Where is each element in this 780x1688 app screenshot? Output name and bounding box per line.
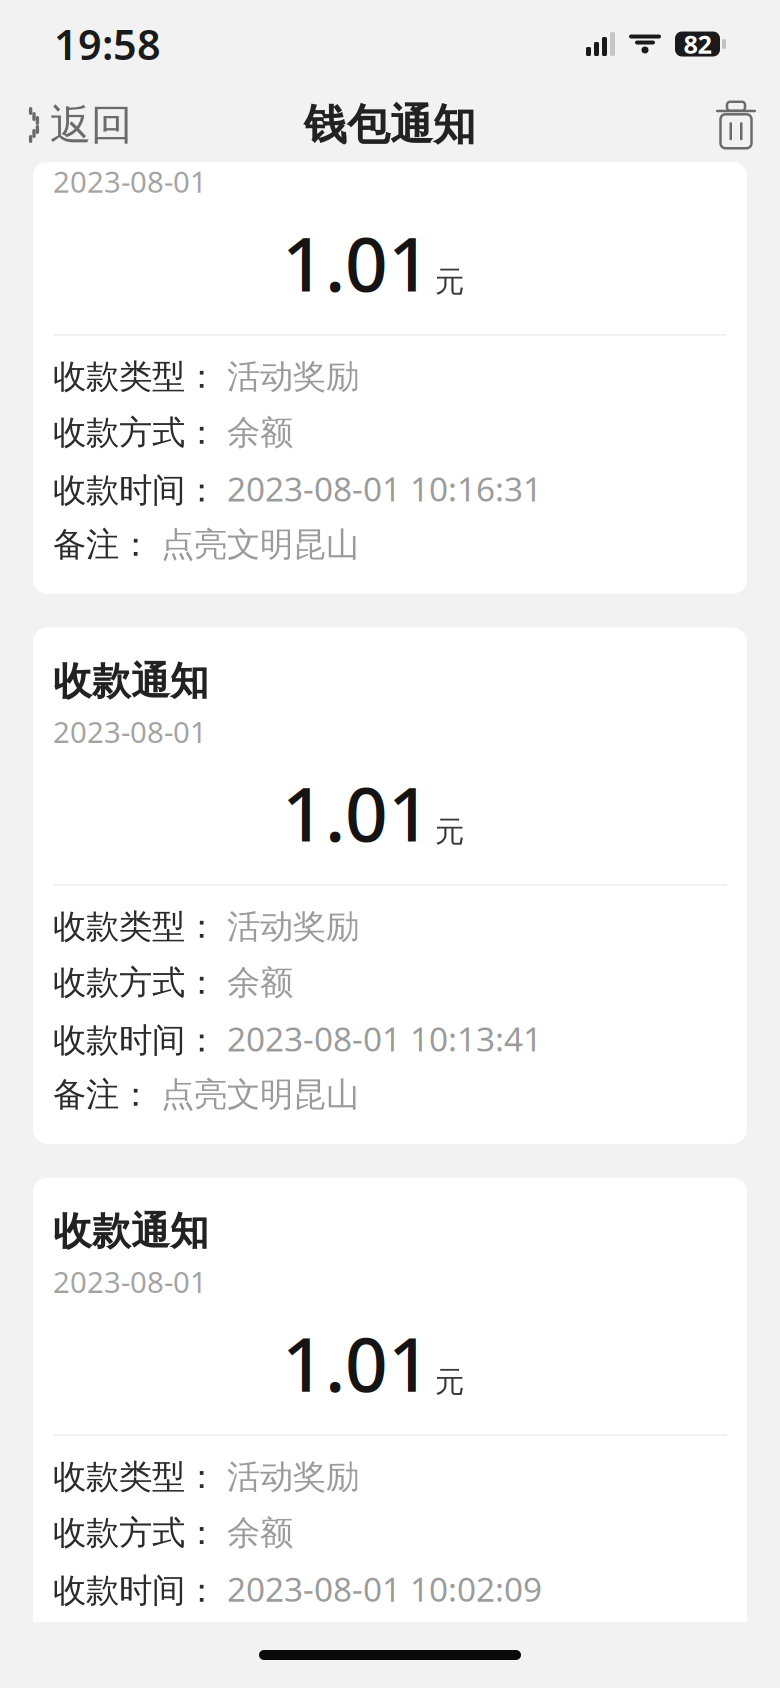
staticText: 点亮文明昆山 [161, 524, 359, 565]
staticText: 收款通知 [53, 658, 209, 705]
staticText: 元 [435, 1364, 464, 1400]
staticText: 收款通知 [53, 1208, 209, 1255]
staticText: 82 [683, 27, 711, 61]
staticText: 元 [435, 264, 464, 300]
staticText: 收款方式： [53, 1512, 218, 1553]
staticText: 2023-08-01 10:13:41 [227, 1016, 542, 1061]
staticText: 1.01 [282, 213, 431, 312]
staticText: 2023-08-01 [53, 712, 207, 751]
staticText: 备注： [53, 524, 152, 565]
staticText: 钱包通知 [304, 99, 476, 151]
button[interactable]: 删除 [692, 88, 780, 162]
staticText: 活动奖励 [227, 356, 359, 397]
staticText: 收款方式： [53, 962, 218, 1003]
staticText: 2023-08-01 10:02:09 [227, 1567, 542, 1611]
staticText: 1.01 [282, 1313, 431, 1412]
staticText: 2023-08-01 [53, 162, 207, 201]
staticText: 活动奖励 [227, 906, 359, 947]
staticText: 备注： [53, 1074, 152, 1115]
staticText: 收款时间： [53, 1020, 218, 1061]
staticText: 收款时间： [53, 1570, 218, 1611]
staticText: 收款类型： [53, 356, 218, 397]
staticText: 点亮文明昆山 [161, 1074, 359, 1115]
staticText: 2023-08-01 [53, 1262, 207, 1301]
staticText: 1.01 [282, 763, 431, 862]
staticText: 余额 [227, 962, 293, 1003]
staticText: 余额 [227, 1512, 293, 1553]
staticText: 余额 [227, 412, 293, 453]
staticText: 收款类型： [53, 906, 218, 947]
staticText: 收款方式： [53, 412, 218, 453]
staticText: 收款时间： [53, 470, 218, 511]
staticText: 返回 [50, 100, 132, 150]
staticText: 活动奖励 [227, 1456, 359, 1497]
staticText: 19:58 [54, 17, 161, 71]
staticText: 收款类型： [53, 1456, 218, 1497]
staticText: 2023-08-01 10:16:31 [227, 466, 542, 511]
staticText: 元 [435, 814, 464, 850]
staticText: 点亮文明昆山 [161, 1624, 359, 1665]
button[interactable]: 返回 [0, 88, 158, 162]
